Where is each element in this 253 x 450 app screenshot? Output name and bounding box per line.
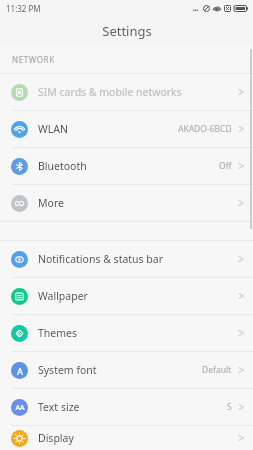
button[interactable]: WLAN xyxy=(0,111,253,147)
staticText: SIM cards & mobile networks xyxy=(38,85,238,99)
staticText: Display xyxy=(38,431,238,445)
staticText: Text size xyxy=(38,400,227,414)
button[interactable]: A xyxy=(0,352,253,388)
staticText: AKADO-6BCD xyxy=(178,123,232,135)
staticText: Notifications & status bar xyxy=(38,252,238,266)
button[interactable]: Notifications & status bar xyxy=(0,241,253,277)
button[interactable]: More xyxy=(0,185,253,221)
staticText: More xyxy=(38,196,238,210)
button[interactable]: AA xyxy=(0,389,253,425)
button[interactable]: Wallpaper xyxy=(0,278,253,314)
staticText: Off xyxy=(219,160,232,172)
staticText: WLAN xyxy=(38,122,178,136)
staticText: Themes xyxy=(38,326,238,340)
staticText: 11:32 PM xyxy=(6,3,41,14)
staticText: A xyxy=(17,365,23,377)
button[interactable]: Display xyxy=(0,426,253,450)
staticText: Bluetooth xyxy=(38,159,219,173)
button[interactable]: Bluetooth xyxy=(0,148,253,184)
staticText: Settings xyxy=(102,22,152,40)
button[interactable]: SIM cards & mobile networks xyxy=(0,74,253,110)
staticText: Default xyxy=(202,364,232,376)
staticText: AA xyxy=(15,403,25,413)
button[interactable]: Themes xyxy=(0,315,253,351)
staticText: S xyxy=(227,401,232,413)
staticText: System font xyxy=(38,363,202,377)
staticText: Wallpaper xyxy=(38,289,238,303)
staticText: NETWORK xyxy=(12,54,55,65)
